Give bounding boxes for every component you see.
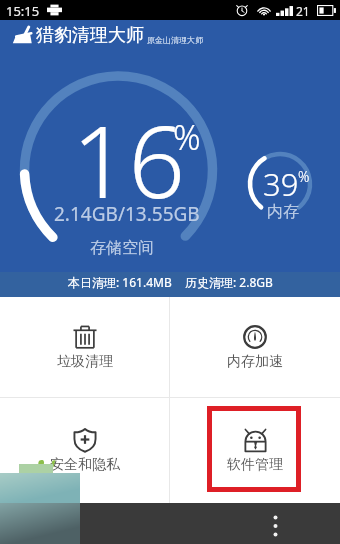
button[interactable]: 内存加速 (170, 297, 340, 397)
staticText: % (298, 167, 310, 186)
button[interactable]: 安全和隐私 (0, 398, 169, 503)
button[interactable]: 垃圾清理 (0, 297, 169, 397)
staticText: 39 (263, 163, 299, 205)
button[interactable]: More options (256, 505, 295, 544)
staticText: 存储空间 (90, 238, 154, 258)
staticText: 猎豹清理大师 (36, 24, 144, 47)
staticText: 本日清理: 161.4MB (68, 274, 172, 290)
staticText: 15:15 (6, 2, 40, 20)
button[interactable]: 软件管理 (170, 398, 340, 503)
staticText: 原金山清理大师 (147, 35, 203, 45)
staticText: 2.14GB/13.55GB (54, 201, 200, 227)
staticText: 21 (296, 3, 310, 19)
staticText: 垃圾清理 (57, 353, 113, 371)
staticText: 16 (72, 92, 186, 227)
staticText: 安全和隐私 (50, 456, 120, 474)
staticText: 内存 (267, 202, 299, 222)
staticText: 历史清理: 2.8GB (185, 274, 273, 290)
staticText: % (173, 114, 201, 160)
staticText: 软件管理 (227, 456, 283, 474)
staticText: 内存加速 (227, 353, 283, 371)
